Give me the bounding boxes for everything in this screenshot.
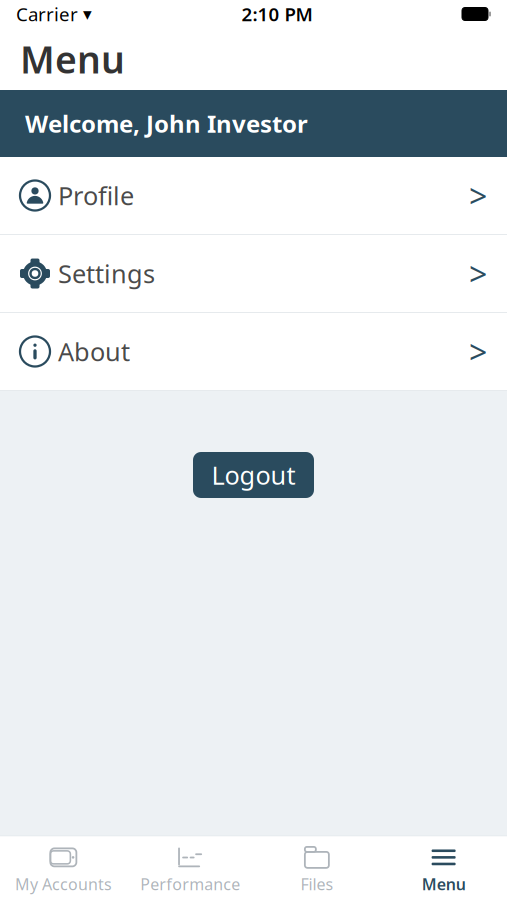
- button[interactable]: Profile: [0, 157, 507, 235]
- staticText: Settings: [58, 257, 155, 290]
- button[interactable]: Files: [253, 836, 380, 900]
- staticText: 2:10 PM: [241, 2, 312, 26]
- staticText: Menu: [422, 873, 466, 895]
- staticText: >: [469, 252, 487, 295]
- button[interactable]: Settings: [0, 235, 507, 313]
- button[interactable]: Menu: [380, 836, 507, 900]
- staticText: Welcome, John Investor: [25, 108, 308, 139]
- staticText: Carrier: [16, 2, 78, 26]
- staticText: Logout: [211, 458, 295, 492]
- staticText: >: [469, 330, 487, 373]
- staticText: Performance: [140, 873, 240, 895]
- button[interactable]: Logout: [193, 452, 314, 498]
- button[interactable]: About: [0, 313, 507, 391]
- staticText: >: [469, 174, 487, 217]
- staticText: Profile: [58, 179, 134, 212]
- staticText: Files: [300, 873, 333, 895]
- button[interactable]: Performance: [127, 836, 254, 900]
- staticText: ▾: [83, 4, 92, 24]
- staticText: About: [58, 335, 130, 368]
- button[interactable]: My Accounts: [0, 836, 127, 900]
- staticText: My Accounts: [15, 873, 112, 895]
- staticText: Menu: [20, 34, 125, 84]
